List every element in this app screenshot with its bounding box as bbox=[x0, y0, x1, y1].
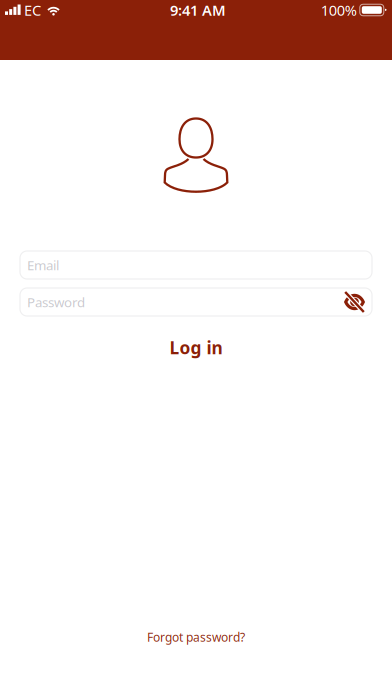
staticText: 9:41 AM bbox=[170, 0, 226, 20]
button[interactable]: Email bbox=[20, 251, 372, 279]
staticText: EC bbox=[24, 0, 41, 20]
button[interactable]: Forgot password? bbox=[131, 623, 261, 651]
staticText: Password bbox=[27, 293, 85, 311]
button[interactable]: Log in bbox=[145, 330, 246, 365]
staticText: Log in bbox=[169, 336, 222, 359]
staticText: 100% bbox=[321, 0, 357, 20]
staticText: Email bbox=[27, 256, 59, 274]
staticText: Forgot password? bbox=[147, 629, 245, 645]
button[interactable]: Password bbox=[20, 288, 372, 316]
button[interactable]: Show password bbox=[344, 291, 365, 313]
